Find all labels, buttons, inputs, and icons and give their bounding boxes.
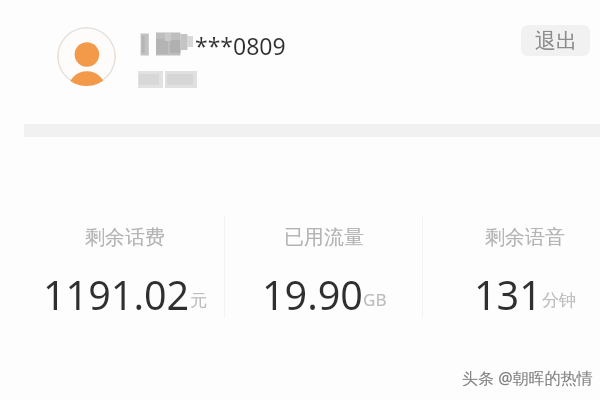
other: Profile photo	[57, 27, 116, 86]
staticText: 已用流量	[284, 225, 364, 250]
staticText: ***0809	[195, 30, 286, 61]
staticText: 19.90	[262, 268, 363, 318]
staticText: GB	[363, 288, 387, 311]
staticText: 元	[190, 290, 207, 311]
staticText: 剩余话费	[85, 225, 165, 250]
staticText: 退出	[535, 28, 577, 54]
staticText: 剩余语音	[485, 225, 565, 250]
button[interactable]: 已用流量	[224, 215, 424, 318]
button[interactable]: 剩余话费	[25, 215, 224, 318]
button[interactable]: 退出	[521, 25, 590, 56]
staticText: 头条 @朝晖的热情	[462, 367, 593, 389]
staticText: 分钟	[542, 290, 576, 311]
button[interactable]: Account, number ***0809	[50, 20, 300, 94]
staticText: 131	[474, 268, 542, 318]
staticText: 1191.02	[43, 268, 190, 318]
button[interactable]: 剩余语音	[450, 215, 600, 318]
